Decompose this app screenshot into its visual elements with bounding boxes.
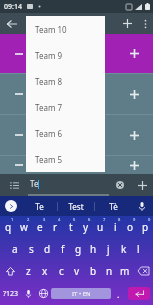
staticText: 1 <box>11 217 14 222</box>
staticText: t <box>69 220 73 234</box>
button[interactable]: Voice input <box>21 282 35 305</box>
button[interactable]: x <box>37 260 53 282</box>
staticText: 9 <box>133 217 136 222</box>
staticText: x <box>42 264 48 278</box>
staticText: IT • EN <box>72 290 91 298</box>
button[interactable]: Expand suggestions <box>0 196 22 216</box>
button[interactable]: s <box>23 238 39 260</box>
staticText: e <box>37 220 43 234</box>
button[interactable]: f <box>55 238 71 260</box>
button[interactable]: Tè <box>95 196 131 216</box>
button[interactable]: j <box>101 238 116 260</box>
button[interactable]: c <box>53 260 69 282</box>
button[interactable]: r <box>48 216 63 238</box>
staticText: 5 <box>73 217 76 222</box>
staticText: w <box>20 220 28 234</box>
button[interactable]: b <box>85 260 101 282</box>
staticText: 4 <box>58 217 61 222</box>
button[interactable]: Enter <box>128 287 150 300</box>
staticText: y <box>83 220 89 234</box>
button[interactable]: Team 8 <box>26 68 105 94</box>
button[interactable]: o <box>123 216 138 238</box>
staticText: k <box>121 242 127 256</box>
staticText: Test <box>68 201 84 212</box>
staticText: Te <box>30 178 39 189</box>
button[interactable]: Add team <box>117 13 137 34</box>
button[interactable]: k <box>116 238 131 260</box>
button[interactable]: Add <box>131 174 153 196</box>
staticText: q <box>5 220 12 234</box>
button[interactable]: List <box>0 174 28 196</box>
button[interactable]: Team 10 <box>26 16 105 42</box>
button[interactable]: Team 5 <box>26 146 105 172</box>
button[interactable]: y <box>78 216 93 238</box>
button[interactable]: e <box>32 216 48 238</box>
button[interactable]: Backspace <box>133 260 153 282</box>
staticText: Te <box>35 201 44 212</box>
button[interactable]: More options <box>137 13 153 34</box>
button[interactable]: d <box>39 238 55 260</box>
button[interactable]: q <box>0 216 16 238</box>
staticText: Tè <box>109 201 118 212</box>
button[interactable]: IT • EN <box>51 288 111 299</box>
staticText: 0 <box>148 217 151 222</box>
button[interactable]: m <box>117 260 133 282</box>
staticText: 7 <box>103 217 106 222</box>
staticText: Team 8 <box>35 76 63 87</box>
button[interactable]: Decrease score <box>0 34 38 73</box>
staticText: 09:14 <box>4 2 22 12</box>
button[interactable]: Change language <box>35 282 51 305</box>
staticText: Team 9 <box>35 50 63 61</box>
button[interactable]: . <box>111 282 125 305</box>
button[interactable]: u <box>93 216 108 238</box>
button[interactable]: Increase score <box>115 115 153 155</box>
button[interactable]: i <box>108 216 123 238</box>
staticText: i <box>114 220 117 234</box>
staticText: l <box>137 242 140 256</box>
staticText: . <box>117 288 120 300</box>
staticText: f <box>61 242 65 256</box>
button[interactable]: g <box>71 238 86 260</box>
button[interactable]: t <box>63 216 78 238</box>
staticText: a <box>12 242 18 256</box>
button[interactable]: ?123 <box>0 282 21 305</box>
staticText: c <box>59 264 64 278</box>
staticText: n <box>106 264 113 278</box>
staticText: 2 <box>27 217 30 222</box>
staticText: Team 10 <box>35 24 67 35</box>
button[interactable]: a <box>7 238 23 260</box>
button[interactable]: Clear text <box>109 174 131 196</box>
staticText: Team 7 <box>35 102 63 113</box>
button[interactable]: Decrease score <box>0 74 38 114</box>
button[interactable]: l <box>131 238 146 260</box>
button[interactable]: Test <box>58 196 94 216</box>
staticText: z <box>26 264 31 278</box>
button[interactable]: z <box>20 260 37 282</box>
button[interactable]: p <box>138 216 153 238</box>
button[interactable]: Increase score <box>115 74 153 114</box>
button[interactable]: Increase score <box>115 34 153 73</box>
button[interactable]: Shift <box>0 260 20 282</box>
button[interactable]: v <box>69 260 85 282</box>
button[interactable]: Decrease score <box>0 156 38 174</box>
staticText: Team 6 <box>35 128 63 139</box>
button[interactable]: Increase score <box>115 156 153 174</box>
button[interactable]: Team 7 <box>26 94 105 120</box>
staticText: h <box>90 242 97 256</box>
staticText: m <box>120 264 130 278</box>
staticText: o <box>127 220 134 234</box>
staticText: r <box>53 220 58 234</box>
button[interactable]: Decrease score <box>0 115 38 155</box>
button[interactable]: h <box>86 238 101 260</box>
button[interactable]: Voice input <box>131 196 153 216</box>
button[interactable]: Te <box>22 196 57 216</box>
staticText: 6 <box>88 217 91 222</box>
staticText: ?123 <box>3 289 19 299</box>
button[interactable]: Team 9 <box>26 42 105 68</box>
button[interactable]: n <box>101 260 117 282</box>
button[interactable]: Back <box>0 13 24 34</box>
button[interactable]: w <box>16 216 32 238</box>
staticText: v <box>74 264 80 278</box>
button[interactable]: Team 6 <box>26 120 105 146</box>
staticText: b <box>90 264 97 278</box>
